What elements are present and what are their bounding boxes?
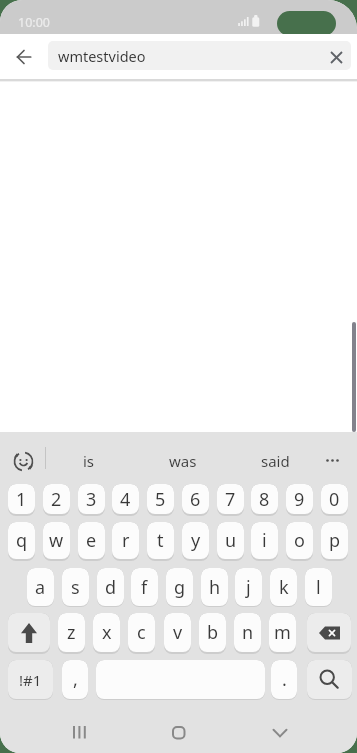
button[interactable]: 0 — [321, 484, 348, 516]
button[interactable] — [8, 41, 40, 73]
staticText: !#1 — [19, 670, 42, 690]
button[interactable]: k — [270, 568, 297, 607]
staticText: s — [71, 575, 80, 600]
staticText: f — [141, 575, 148, 600]
button[interactable]: b — [199, 613, 226, 654]
staticText: is — [83, 451, 95, 471]
button[interactable]: w — [43, 522, 70, 561]
staticText: e — [86, 528, 97, 553]
staticText: p — [329, 528, 341, 553]
button[interactable]: said — [249, 446, 301, 475]
button[interactable]: a — [27, 568, 54, 607]
button[interactable]: e — [78, 522, 105, 561]
staticText: w — [49, 528, 64, 553]
staticText: z — [67, 620, 76, 645]
button[interactable]: q — [8, 522, 35, 561]
button[interactable]: s — [62, 568, 89, 607]
button[interactable]: m — [269, 613, 296, 654]
staticText: , — [73, 667, 78, 692]
staticText: d — [105, 575, 117, 600]
staticText: said — [261, 451, 290, 471]
staticText: o — [294, 528, 305, 553]
button[interactable]: 5 — [147, 484, 174, 516]
button[interactable]: 3 — [78, 484, 105, 516]
button[interactable]: x — [93, 613, 120, 654]
staticText: j — [246, 575, 251, 600]
staticText: a — [35, 575, 46, 600]
button[interactable]: z — [58, 613, 85, 654]
button[interactable]: f — [131, 568, 158, 607]
staticText: 4 — [120, 487, 131, 512]
button[interactable]: r — [112, 522, 139, 561]
button[interactable] — [307, 660, 352, 700]
staticText: 1 — [16, 487, 27, 512]
button[interactable]: 2 — [43, 484, 70, 516]
button[interactable] — [96, 660, 265, 700]
staticText: 3 — [86, 487, 97, 512]
button[interactable]: l — [305, 568, 332, 607]
staticText: h — [209, 575, 221, 600]
staticText: . — [282, 667, 287, 692]
staticText: x — [102, 620, 112, 645]
staticText: l — [316, 575, 321, 600]
button[interactable] — [262, 716, 297, 749]
button[interactable] — [322, 43, 350, 71]
button[interactable]: j — [235, 568, 262, 607]
button[interactable]: wmtestvideo — [48, 41, 351, 70]
staticText: m — [274, 620, 291, 645]
button[interactable]: c — [128, 613, 155, 654]
staticText: v — [173, 620, 183, 645]
staticText: c — [137, 620, 146, 645]
staticText: was — [169, 451, 197, 471]
staticText: k — [279, 575, 289, 600]
button[interactable]: v — [164, 613, 191, 654]
button[interactable] — [62, 716, 96, 749]
staticText: q — [16, 528, 28, 553]
button[interactable]: t — [147, 522, 174, 561]
button[interactable]: was — [157, 446, 209, 475]
staticText: n — [242, 620, 254, 645]
staticText: y — [191, 528, 201, 553]
button[interactable]: 6 — [182, 484, 209, 516]
button[interactable] — [8, 613, 50, 654]
button[interactable]: h — [201, 568, 228, 607]
staticText: 0 — [329, 487, 340, 512]
button[interactable]: . — [271, 660, 297, 700]
button[interactable] — [162, 716, 196, 749]
staticText: i — [262, 528, 267, 553]
staticText: u — [225, 528, 237, 553]
button[interactable]: 7 — [217, 484, 244, 516]
staticText: 10:00 — [18, 14, 50, 31]
staticText: r — [122, 528, 130, 553]
staticText: b — [207, 620, 219, 645]
staticText: 2 — [51, 487, 62, 512]
button[interactable]: , — [62, 660, 88, 700]
button[interactable]: 4 — [112, 484, 139, 516]
staticText: g — [174, 575, 186, 600]
button[interactable]: is — [63, 446, 114, 475]
staticText: 6 — [190, 487, 201, 512]
button[interactable]: d — [97, 568, 124, 607]
button[interactable]: !#1 — [8, 660, 53, 700]
staticText: t — [157, 528, 164, 553]
button[interactable]: 8 — [251, 484, 278, 516]
staticText: 8 — [259, 487, 270, 512]
button[interactable] — [10, 448, 36, 474]
button[interactable] — [318, 448, 346, 473]
button[interactable]: i — [251, 522, 278, 561]
staticText: 7 — [225, 487, 236, 512]
button[interactable] — [307, 613, 351, 654]
button[interactable]: u — [217, 522, 244, 561]
button[interactable]: 9 — [286, 484, 313, 516]
staticText: wmtestvideo — [58, 46, 146, 66]
staticText: 5 — [155, 487, 166, 512]
button[interactable]: p — [321, 522, 348, 561]
staticText: 9 — [294, 487, 305, 512]
button[interactable]: g — [166, 568, 193, 607]
button[interactable]: y — [182, 522, 209, 561]
button[interactable]: n — [234, 613, 261, 654]
button[interactable]: o — [286, 522, 313, 561]
button[interactable]: 1 — [8, 484, 35, 516]
